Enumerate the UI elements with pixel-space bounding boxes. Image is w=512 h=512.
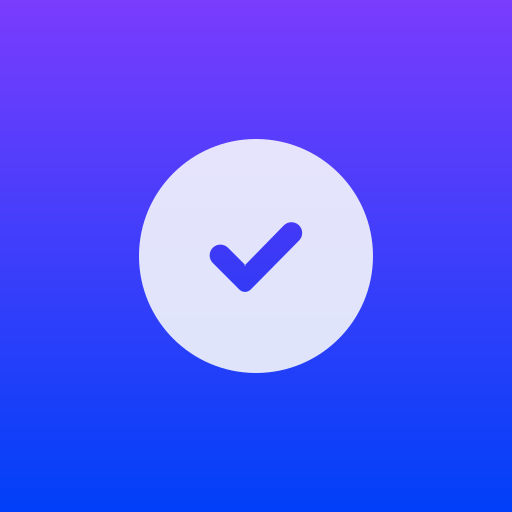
- button[interactable]: Open app: [0, 0, 512, 512]
